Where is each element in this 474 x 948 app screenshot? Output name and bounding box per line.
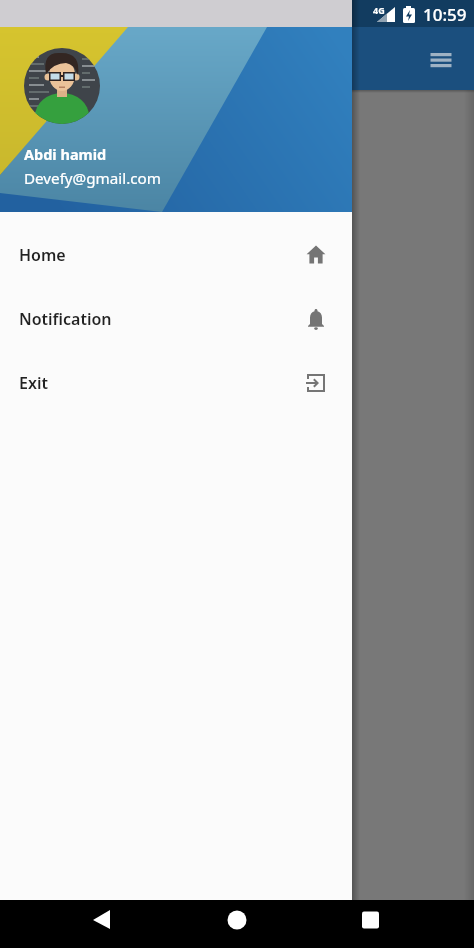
button[interactable]: Exit [0, 351, 352, 415]
staticText: 4G [373, 4, 385, 16]
button[interactable] [213, 900, 261, 948]
staticText: Abdi hamid [24, 144, 107, 164]
staticText: Home [19, 244, 66, 266]
button[interactable] [77, 900, 125, 948]
button[interactable] [421, 40, 461, 80]
button[interactable]: Home [0, 223, 352, 287]
button[interactable] [347, 900, 395, 948]
staticText: Devefy@gmail.com [24, 168, 161, 189]
staticText: Notification [19, 308, 112, 330]
staticText: 10:59 [423, 3, 467, 26]
button[interactable]: Notification [0, 287, 352, 351]
staticText: Exit [19, 372, 48, 394]
